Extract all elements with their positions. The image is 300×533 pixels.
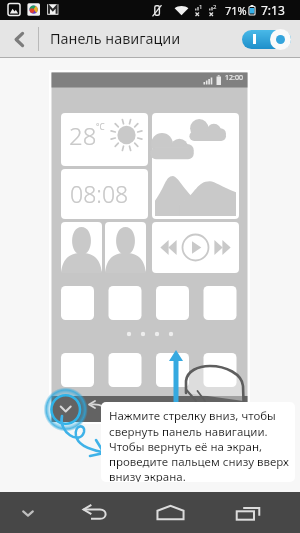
staticText: Нажмите стрелку вниз, чтобы свернуть пан… (109, 408, 289, 482)
staticText: 7:13 (261, 2, 285, 18)
button[interactable]: Toggle navigation bar (242, 27, 291, 51)
staticText: 28 (69, 119, 97, 152)
button[interactable]: Нажмите стрелку вниз, чтобы свернуть пан… (101, 402, 295, 482)
staticText: 08:08 (70, 178, 129, 209)
staticText: 12:00 (225, 73, 243, 83)
button[interactable]: Home (132, 492, 209, 533)
staticText: 2 (213, 3, 217, 11)
button[interactable]: Recents (209, 492, 286, 533)
staticText: 71% (225, 3, 247, 18)
staticText: °C (96, 121, 105, 132)
button[interactable]: Back (0, 20, 38, 58)
staticText: 1 (199, 3, 203, 11)
button[interactable]: Hide navigation bar (0, 492, 56, 533)
staticText: Панель навигации (50, 29, 181, 49)
button[interactable]: Back (56, 492, 132, 533)
